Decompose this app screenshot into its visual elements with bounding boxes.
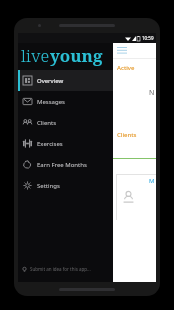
staticText: Submit an idea for this app... (30, 266, 91, 272)
staticText: N (149, 88, 155, 98)
button[interactable]: Submit an idea for this app... (18, 261, 113, 277)
staticText: M (149, 177, 155, 185)
staticText: Earn Free Months (37, 161, 87, 169)
staticText: Exercises (37, 140, 63, 148)
button[interactable]: Earn Free Months (18, 154, 113, 175)
staticText: 10:59 (142, 35, 154, 41)
button[interactable]: Overview (18, 70, 113, 91)
staticText: Messages (37, 98, 65, 106)
button[interactable]: M (116, 174, 156, 220)
staticText: live (21, 44, 50, 67)
staticText: Overview (37, 77, 64, 85)
button[interactable]: Settings (18, 175, 113, 196)
button[interactable]: Exercises (18, 133, 113, 154)
staticText: Clients Overview (117, 131, 156, 139)
staticText: young (50, 44, 103, 67)
button[interactable]: Messages (18, 91, 113, 112)
button[interactable]: Open navigation drawer (113, 43, 156, 58)
staticText: Clients (37, 119, 57, 127)
button[interactable]: Clients (18, 112, 113, 133)
staticText: Settings (37, 182, 60, 190)
staticText: Active Sessions (117, 64, 156, 72)
